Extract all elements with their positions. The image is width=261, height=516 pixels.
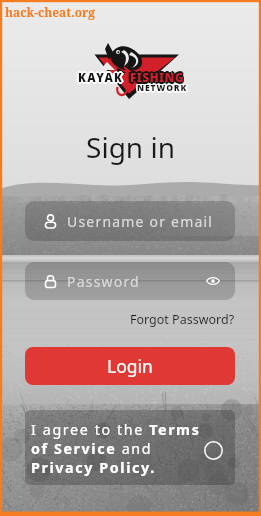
staticText: KAYAK xyxy=(77,69,123,85)
staticText: FISHING xyxy=(130,70,185,86)
staticText: NETWORK xyxy=(137,84,188,96)
staticText: Username or email xyxy=(67,212,214,231)
staticText: FISHING xyxy=(131,71,186,87)
staticText: FISHING xyxy=(131,69,186,85)
staticText: FISHING xyxy=(130,68,185,84)
staticText: NETWORK xyxy=(136,83,187,95)
staticText: Sign in xyxy=(0,128,261,166)
staticText: NETWORK xyxy=(137,82,188,94)
staticText: NETWORK xyxy=(137,81,188,93)
button[interactable]: I agree to the Terms of Service and Priv… xyxy=(25,410,235,485)
button[interactable]: Username or email xyxy=(25,201,235,241)
staticText: FISHING xyxy=(131,70,186,86)
staticText: I agree to the Terms of Service and Priv… xyxy=(31,420,201,477)
staticText: KAYAK xyxy=(78,68,124,84)
staticText: NETWORK xyxy=(138,83,189,95)
staticText: NETWORK xyxy=(138,81,189,93)
staticText: FISHING xyxy=(128,70,183,86)
staticText: KAYAK xyxy=(78,72,124,88)
staticText: hack-cheat.org xyxy=(5,4,96,20)
staticText: NETWORK xyxy=(136,82,187,94)
staticText: KAYAK xyxy=(79,71,125,87)
staticText: KAYAK xyxy=(78,70,124,86)
button[interactable]: Password xyxy=(25,262,235,300)
staticText: KAYAK xyxy=(76,70,122,86)
staticText: KAYAK xyxy=(79,69,125,85)
staticText: Password xyxy=(67,272,140,291)
staticText: KAYAK xyxy=(77,71,123,87)
button[interactable]: Forgot Password? xyxy=(130,311,235,328)
button[interactable]: Show password xyxy=(202,270,224,292)
staticText: FISHING xyxy=(128,71,183,87)
staticText: FISHING xyxy=(130,72,185,88)
button[interactable]: Agree checkbox xyxy=(204,441,223,460)
staticText: KAYAK xyxy=(80,70,126,86)
staticText: NETWORK xyxy=(139,82,190,94)
button[interactable]: Login xyxy=(25,347,235,385)
staticText: Login xyxy=(107,354,153,378)
staticText: FISHING xyxy=(128,69,183,85)
staticText: NETWORK xyxy=(136,81,187,93)
